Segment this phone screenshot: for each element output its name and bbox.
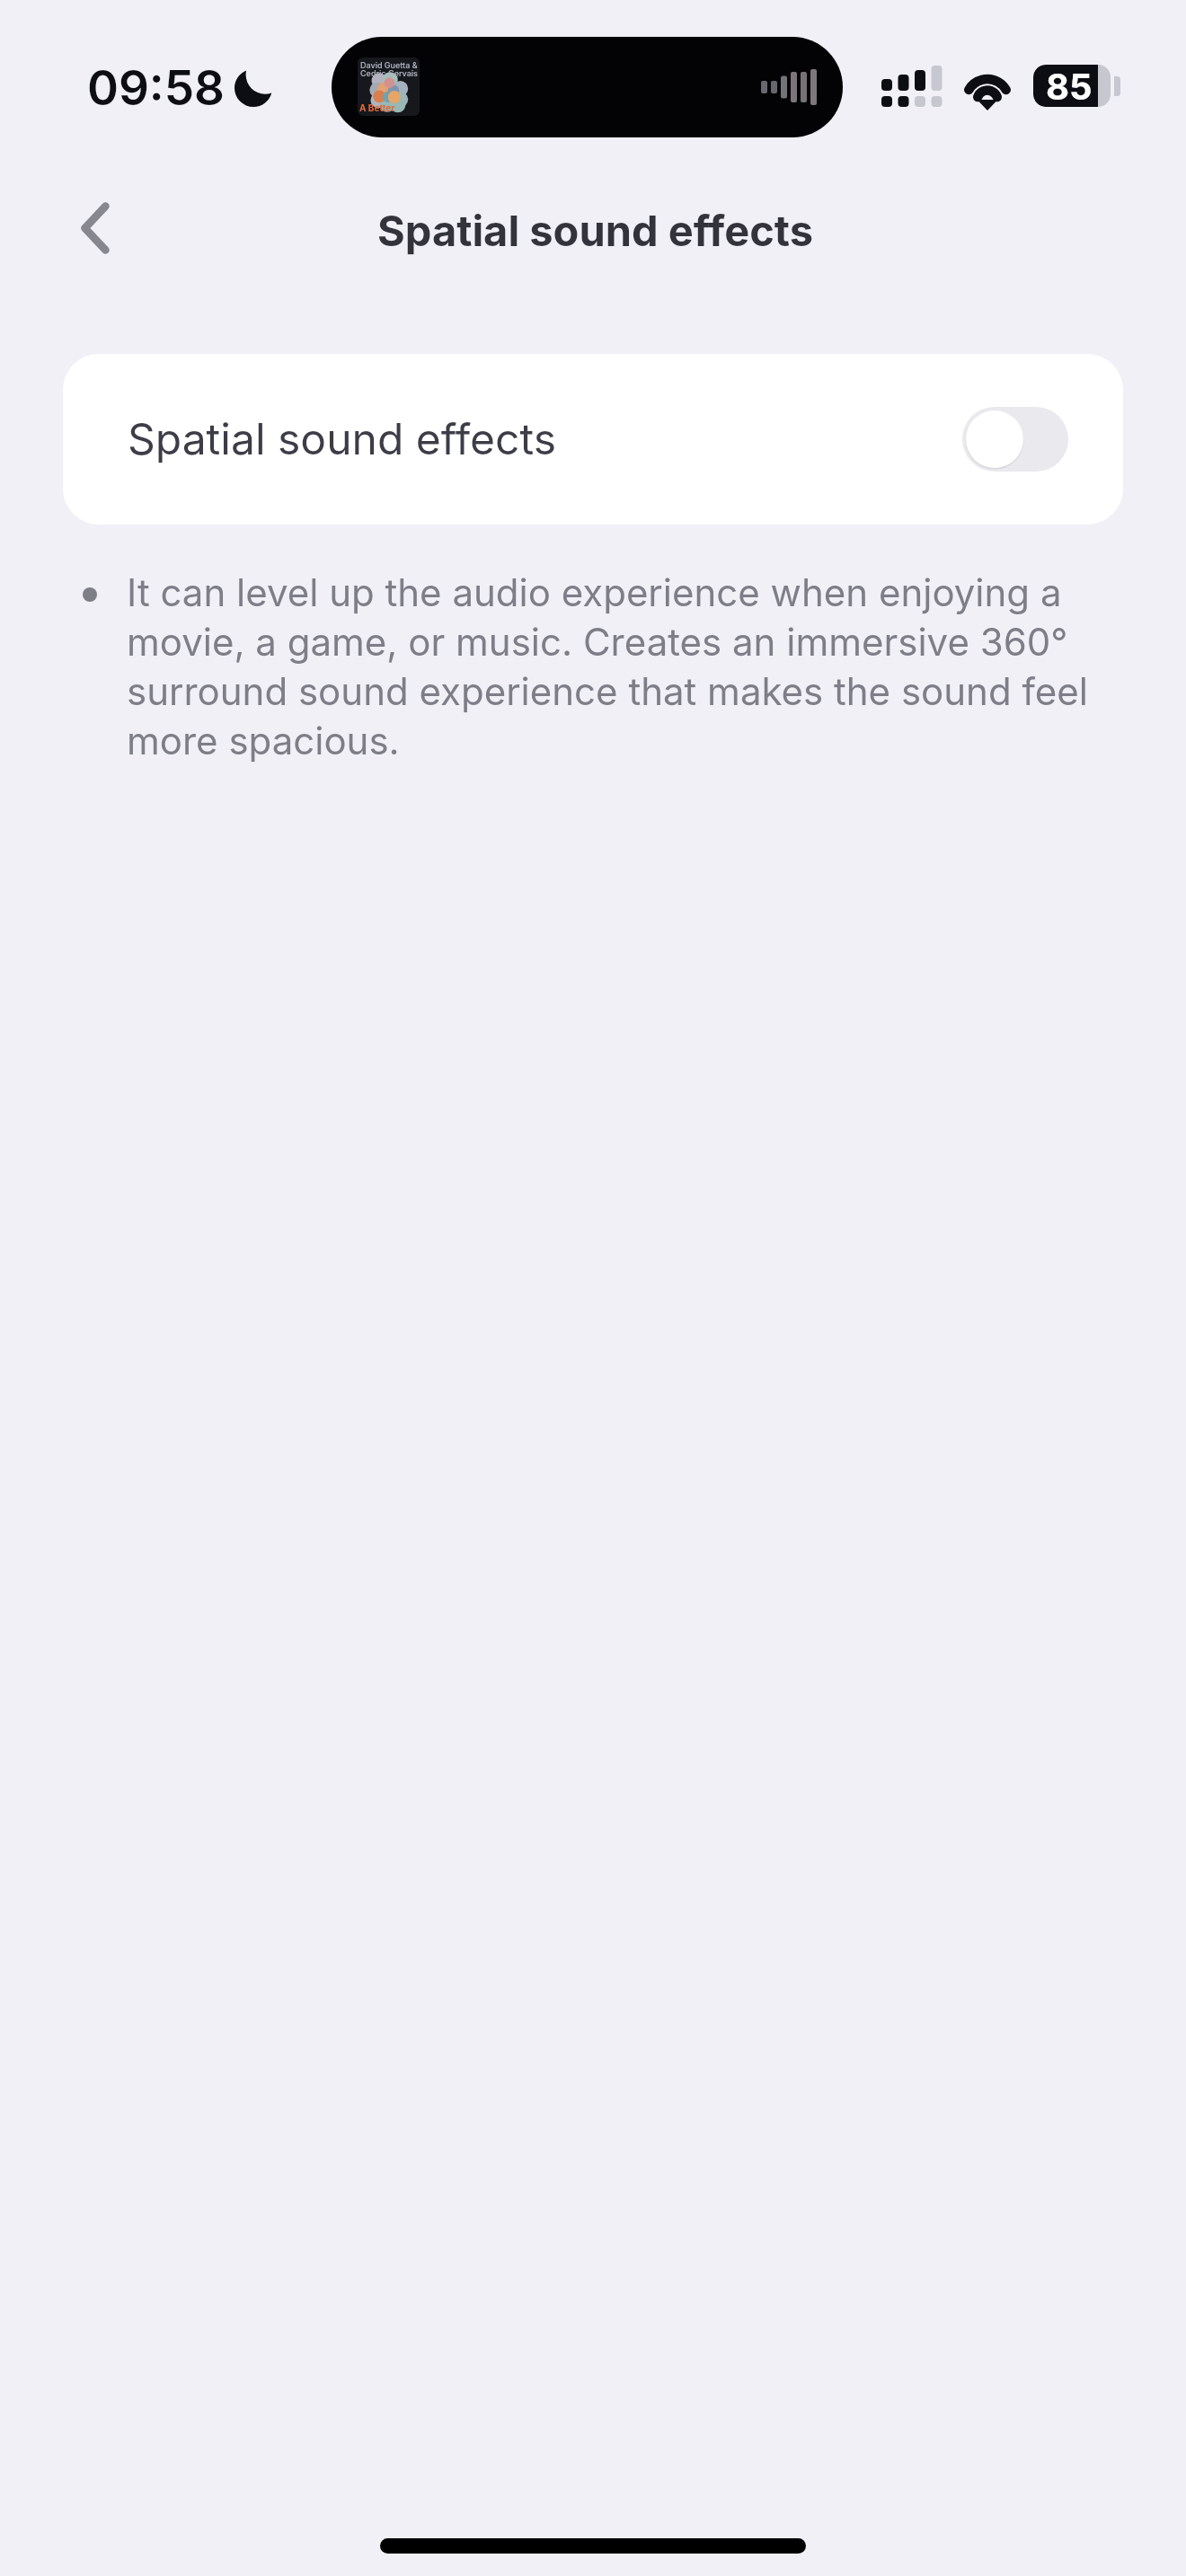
- staticText: Spatial sound effects: [128, 412, 556, 464]
- staticText: Cedric Gervais: [360, 68, 418, 78]
- staticText: It can level up the audio experience whe…: [127, 569, 1106, 763]
- staticText: 09:58: [87, 59, 226, 117]
- staticText: A Better World: [359, 102, 420, 113]
- staticText: David Guetta &: [360, 60, 418, 70]
- button[interactable]: Spatial sound effects switch, off: [962, 407, 1068, 472]
- button[interactable]: Back: [56, 189, 135, 268]
- button[interactable]: Spatial sound effects: [63, 354, 1123, 525]
- staticText: Spatial sound effects: [377, 205, 813, 256]
- staticText: 85: [1046, 65, 1093, 107]
